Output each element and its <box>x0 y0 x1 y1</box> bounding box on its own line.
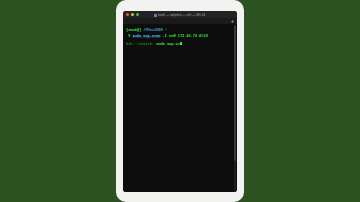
staticText: • <box>179 19 181 23</box>
button[interactable]: Close window <box>126 13 129 16</box>
staticText: $ sudo arp-scan -I en0 172.26.74.0/24 <box>126 33 208 38</box>
button[interactable]: Minimize window <box>131 13 134 16</box>
staticText: [root@] /PDev2600 ~ <box>126 27 167 32</box>
button[interactable]: Scroll terminal <box>234 25 236 191</box>
staticText: bsh:~/search: sudo arp-sc <box>126 41 180 46</box>
button[interactable]: New tab <box>230 19 235 24</box>
button[interactable]: Zoom window <box>136 13 139 16</box>
staticText: bash — salpdev — ssh — 80×24 <box>158 13 206 17</box>
